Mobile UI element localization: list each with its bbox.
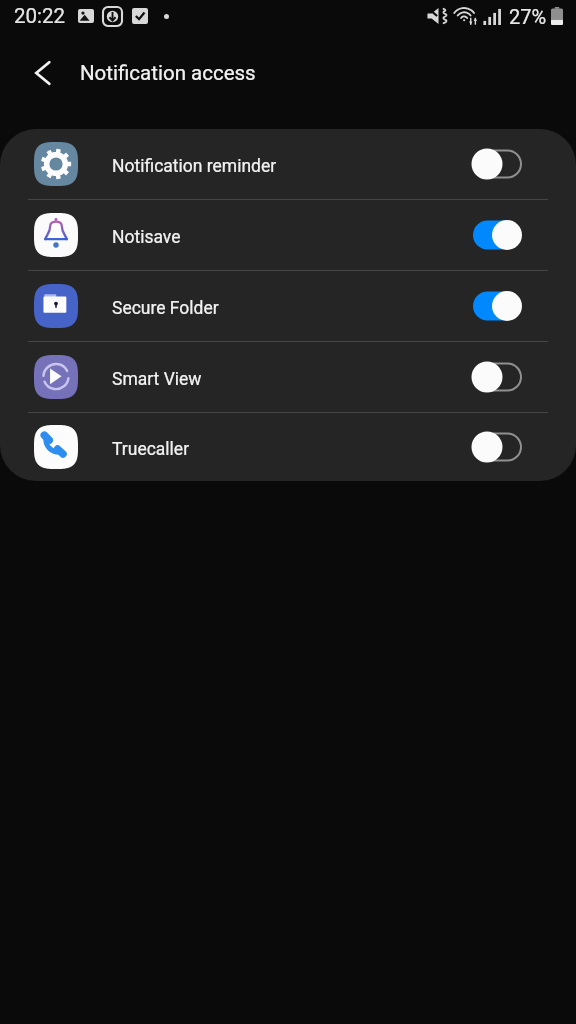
staticText: 20:22 [14, 4, 66, 28]
button[interactable]: Smart View [0, 342, 576, 412]
staticText: Secure Folder [112, 298, 219, 319]
staticText: Truecaller [112, 439, 190, 460]
button[interactable]: Back [20, 49, 67, 96]
staticText: 27% [509, 5, 547, 28]
staticText: Notification access [80, 61, 256, 85]
button[interactable]: Secure Folder [0, 271, 576, 341]
staticText: Smart View [112, 369, 202, 390]
staticText: Notisave [112, 227, 181, 248]
button[interactable]: Notification reminder [0, 129, 576, 199]
button[interactable]: Notisave [0, 200, 576, 270]
staticText: Notification reminder [112, 156, 277, 177]
button[interactable]: Truecaller [0, 413, 576, 481]
